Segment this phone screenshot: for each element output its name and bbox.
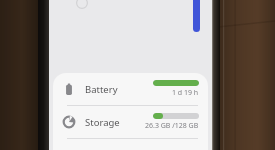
staticText: 1 d 19 h — [172, 88, 199, 98]
staticText: 26.3 GB /128 GB — [145, 121, 199, 131]
other: Scroll position — [193, 0, 200, 32]
button[interactable]: Storage — [53, 106, 208, 138]
button[interactable]: Battery — [53, 73, 208, 105]
staticText: Battery — [85, 83, 118, 96]
staticText: Storage — [85, 116, 120, 129]
